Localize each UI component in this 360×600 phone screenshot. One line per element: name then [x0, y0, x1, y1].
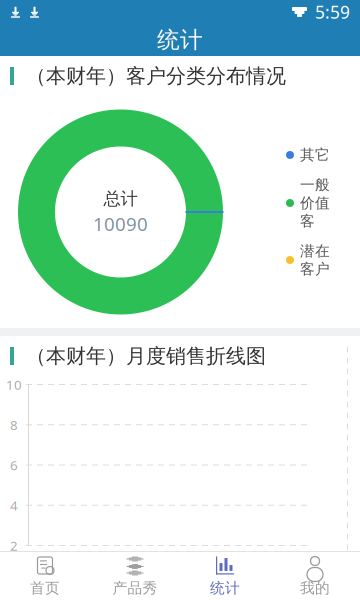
- staticText: 我的: [300, 579, 330, 597]
- button[interactable]: 我的: [270, 552, 360, 600]
- staticText: 其它: [300, 146, 330, 164]
- staticText: 统计: [210, 579, 240, 597]
- staticText: 2: [10, 537, 18, 554]
- button[interactable]: 统计: [180, 552, 270, 600]
- staticText: 首页: [30, 579, 60, 597]
- staticText: 5:59: [315, 0, 350, 23]
- button[interactable]: 产品秀: [90, 552, 180, 600]
- staticText: （本财年）月度销售折线图: [26, 344, 266, 368]
- staticText: 6: [10, 456, 18, 474]
- staticText: （本财年）客户分类分布情况: [26, 64, 286, 88]
- staticText: 10090: [93, 211, 148, 236]
- staticText: 统计: [157, 26, 203, 54]
- staticText: 总计: [103, 188, 137, 209]
- staticText: 潜在客户: [300, 242, 330, 278]
- staticText: 10: [6, 376, 22, 393]
- staticText: 一般价值客: [300, 176, 330, 230]
- staticText: 产品秀: [112, 579, 157, 597]
- staticText: 4: [10, 496, 18, 514]
- button[interactable]: 首页: [0, 552, 90, 600]
- staticText: 8: [10, 416, 18, 434]
